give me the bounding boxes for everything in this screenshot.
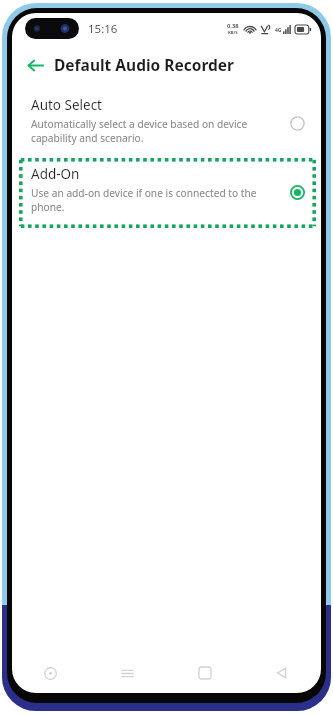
staticText: 0.38 (227, 22, 239, 30)
button[interactable]: Add-On selected (286, 181, 308, 203)
staticText: Auto Select (31, 96, 102, 114)
staticText: Add-On (31, 165, 80, 183)
button[interactable]: Home (166, 653, 243, 693)
button[interactable]: Back (243, 653, 320, 693)
button[interactable]: Back (19, 49, 51, 81)
staticText: 15:16 (88, 21, 118, 37)
staticText: phone. (31, 200, 65, 214)
button[interactable]: Auto Select (12, 96, 321, 145)
staticText: capability and scenario. (31, 131, 144, 145)
staticText: Use an add-on device if one is connected… (31, 186, 257, 200)
staticText: KB/S (228, 30, 238, 36)
button[interactable]: Add-On (12, 165, 321, 214)
button[interactable]: Auto Select option (286, 112, 308, 134)
staticText: Automatically select a device based on d… (31, 117, 248, 131)
staticText: Default Audio Recorder (54, 54, 234, 75)
staticText: 4G (275, 27, 282, 34)
button[interactable]: Recents (89, 653, 166, 693)
button[interactable]: Assistant (12, 653, 89, 693)
